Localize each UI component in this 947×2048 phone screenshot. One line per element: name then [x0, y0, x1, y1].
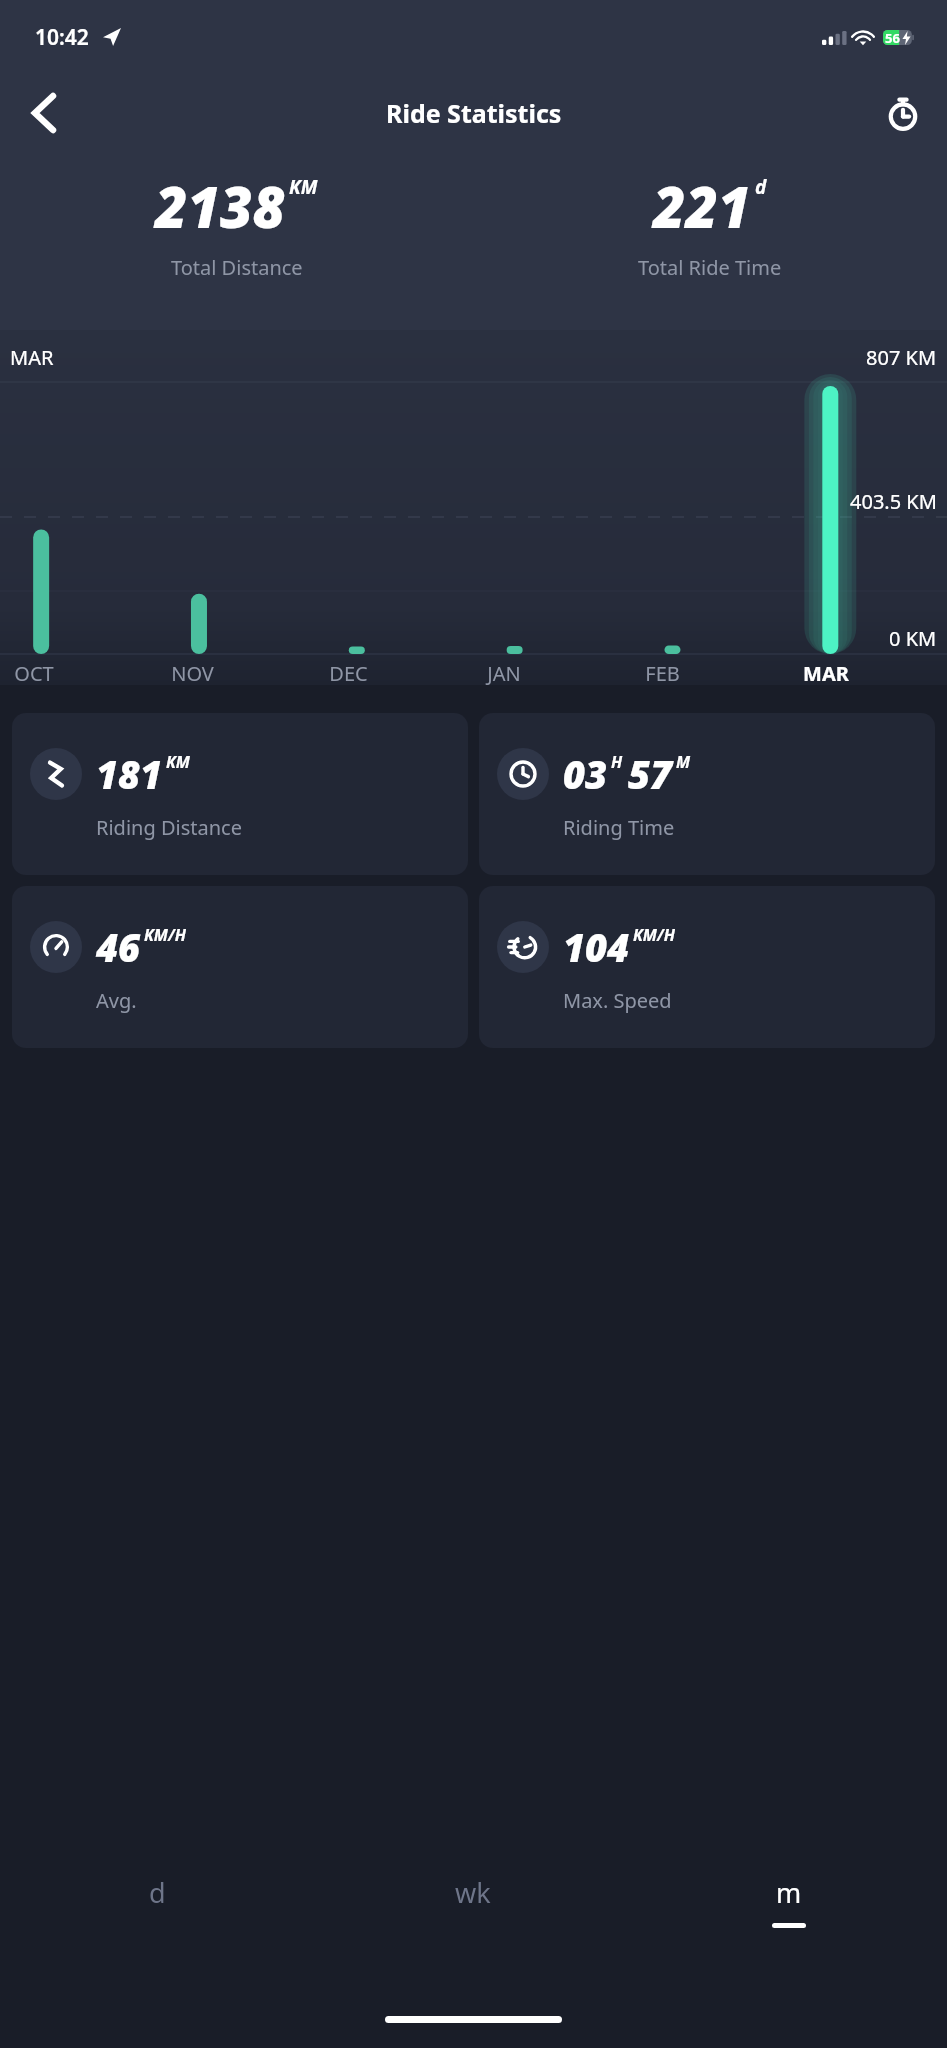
button[interactable]: 46	[12, 886, 468, 1048]
button[interactable]: OCT	[14, 660, 54, 687]
button[interactable]: wk	[315, 1874, 631, 1923]
staticText: Ride Statistics	[386, 96, 562, 130]
staticText: Riding Time	[563, 814, 675, 841]
staticText: d	[755, 174, 767, 200]
staticText: Total Distance	[171, 254, 303, 281]
staticText: 181	[96, 748, 163, 800]
staticText: wk	[455, 1874, 491, 1911]
button[interactable]: d	[0, 1874, 315, 1923]
staticText: KM	[289, 174, 318, 200]
staticText: KM/H	[144, 924, 186, 946]
staticText: 807 KM	[866, 344, 937, 371]
staticText: KM	[166, 751, 190, 773]
staticText: 46	[96, 921, 141, 973]
button[interactable]: DEC	[329, 660, 368, 687]
button[interactable]: 03	[479, 713, 935, 875]
staticText: 56	[885, 29, 900, 47]
button[interactable]: Timer	[873, 83, 933, 143]
staticText: 57	[628, 748, 673, 800]
staticText: 104	[563, 921, 630, 973]
staticText: d	[149, 1874, 166, 1911]
staticText: 221	[653, 168, 751, 244]
staticText: Max. Speed	[563, 987, 672, 1014]
button[interactable]: MAR	[803, 660, 849, 687]
button[interactable]: 181	[12, 713, 468, 875]
staticText: 0 KM	[889, 625, 937, 652]
button[interactable]: 104	[479, 886, 935, 1048]
staticText: 403.5 KM	[850, 488, 937, 515]
button[interactable]: FEB	[645, 660, 680, 687]
staticText: Total Ride Time	[638, 254, 782, 281]
staticText: H	[611, 751, 623, 773]
staticText: 03	[563, 748, 608, 800]
staticText: KM/H	[633, 924, 675, 946]
staticText: m	[776, 1874, 802, 1911]
staticText: 2138	[155, 168, 285, 244]
staticText: Avg.	[96, 987, 137, 1014]
staticText: 10:42	[35, 23, 89, 52]
staticText: M	[676, 751, 691, 773]
staticText: Riding Distance	[96, 814, 242, 841]
button[interactable]: JAN	[487, 660, 521, 687]
button[interactable]: NOV	[171, 660, 214, 687]
button[interactable]: m	[631, 1874, 947, 1928]
staticText: MAR	[10, 344, 54, 371]
button[interactable]: Back	[14, 83, 74, 143]
